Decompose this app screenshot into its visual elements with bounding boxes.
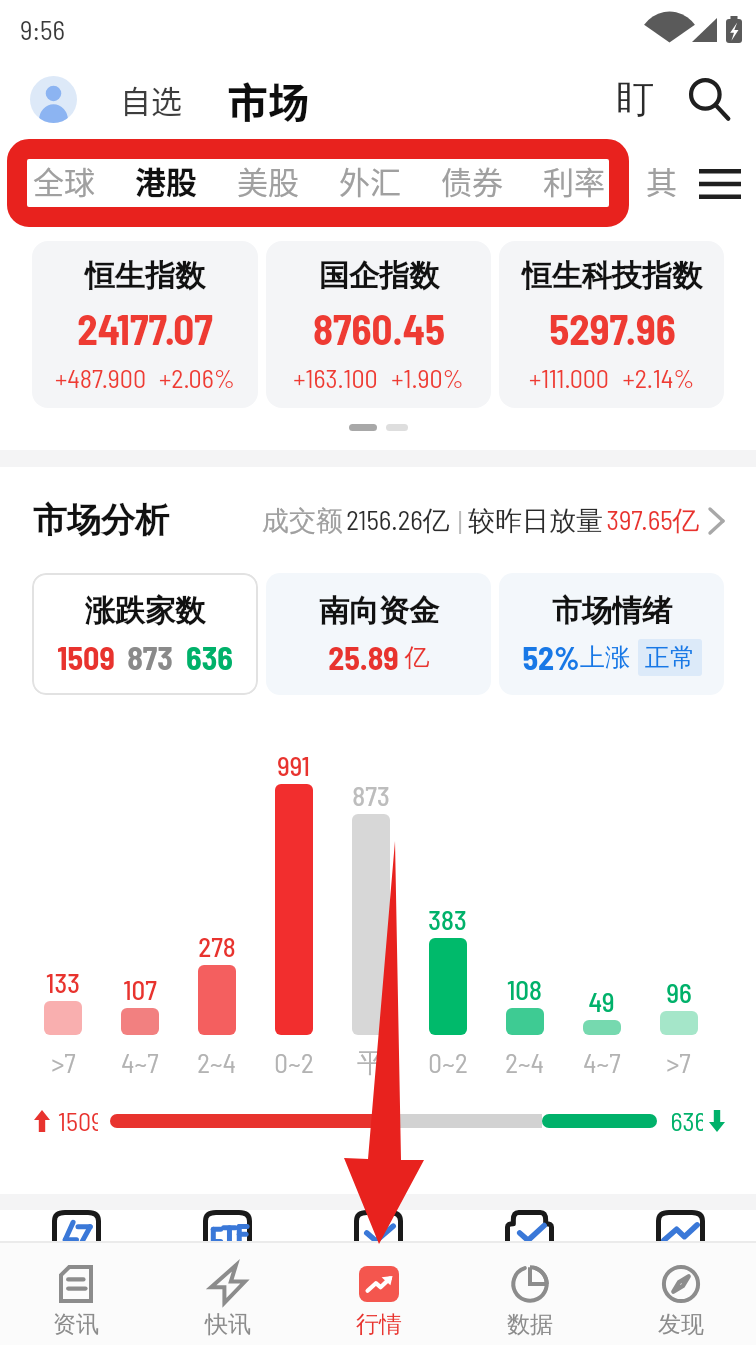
button[interactable]: 美股 bbox=[217, 140, 319, 228]
staticText: 24177.07 bbox=[77, 304, 213, 353]
button[interactable]: 恒生科技指数 bbox=[499, 241, 724, 408]
button[interactable]: 发现 bbox=[605, 1249, 756, 1339]
staticText: >7 bbox=[666, 1046, 691, 1078]
staticText: 成交额 bbox=[259, 503, 346, 538]
staticText: 2~4 bbox=[197, 1046, 236, 1078]
button[interactable] bbox=[0, 1210, 152, 1241]
staticText: 涨跌家数 bbox=[85, 592, 205, 630]
staticText: 49 bbox=[588, 985, 615, 1017]
staticText: 636 bbox=[670, 1105, 703, 1136]
staticText: 较昨日放量 bbox=[465, 503, 606, 538]
button[interactable]: 市场情绪 bbox=[499, 573, 724, 695]
staticText: 恒生科技指数 bbox=[522, 257, 702, 295]
staticText: | bbox=[450, 505, 465, 537]
staticText: +2.06% bbox=[159, 362, 235, 393]
button[interactable]: 债券 bbox=[421, 140, 523, 228]
button[interactable]: 涨跌家数 bbox=[32, 573, 258, 695]
button[interactable]: 行情 bbox=[303, 1249, 454, 1339]
staticText: 52% bbox=[522, 638, 580, 676]
staticText: 资讯 bbox=[53, 1310, 99, 1339]
staticText: 市场情绪 bbox=[552, 592, 672, 630]
staticText: 9:56 bbox=[20, 13, 65, 45]
staticText: 1509 bbox=[57, 638, 115, 676]
staticText: 636 bbox=[186, 638, 233, 676]
staticText: 平 bbox=[357, 1046, 384, 1080]
staticText: 278 bbox=[198, 930, 236, 962]
staticText: 108 bbox=[507, 973, 542, 1005]
staticText: 873 bbox=[127, 638, 173, 676]
staticText: 0~2 bbox=[274, 1046, 314, 1078]
staticText: 25.89 bbox=[328, 638, 399, 676]
staticText: >7 bbox=[51, 1046, 76, 1078]
button[interactable]: 国企指数 bbox=[266, 241, 491, 408]
staticText: 债券 bbox=[441, 158, 503, 203]
staticText: 南向资金 bbox=[319, 592, 439, 630]
staticText: 亿 bbox=[399, 641, 430, 673]
button[interactable] bbox=[454, 1210, 605, 1241]
staticText: 8760.45 bbox=[313, 304, 445, 353]
staticText: +163.100 bbox=[293, 362, 378, 393]
staticText: 5297.96 bbox=[549, 304, 676, 353]
staticText: 港股 bbox=[135, 158, 197, 203]
staticText: 0~2 bbox=[428, 1046, 468, 1078]
staticText: 991 bbox=[277, 749, 310, 781]
staticText: +2.14% bbox=[622, 362, 695, 393]
staticText: 利率 bbox=[543, 158, 605, 203]
button[interactable] bbox=[303, 1210, 454, 1241]
staticText: 1509 bbox=[58, 1105, 98, 1136]
button[interactable]: 自选 bbox=[120, 77, 182, 122]
button[interactable]: Profile bbox=[30, 76, 77, 123]
staticText: 397.65亿 bbox=[606, 503, 700, 538]
staticText: +487.900 bbox=[55, 362, 146, 393]
button[interactable]: 恒生指数 bbox=[32, 241, 258, 408]
staticText: 其 bbox=[646, 158, 677, 203]
button[interactable]: 资讯 bbox=[0, 1249, 152, 1339]
staticText: 正常 bbox=[645, 642, 695, 673]
staticText: 96 bbox=[666, 976, 692, 1008]
staticText: 133 bbox=[46, 966, 80, 998]
button[interactable]: 外汇 bbox=[319, 140, 421, 228]
staticText: 2~4 bbox=[505, 1046, 544, 1078]
staticText: 全球 bbox=[33, 158, 95, 203]
button[interactable]: 数据 bbox=[454, 1249, 605, 1339]
button[interactable]: Menu bbox=[698, 157, 742, 211]
staticText: 发现 bbox=[658, 1310, 704, 1339]
button[interactable]: 利率 bbox=[523, 140, 625, 228]
staticText: +111.000 bbox=[529, 362, 609, 393]
button[interactable] bbox=[152, 1210, 303, 1241]
staticText: 恒生指数 bbox=[85, 257, 205, 295]
staticText: 383 bbox=[428, 903, 467, 935]
button[interactable]: 南向资金 bbox=[266, 573, 491, 695]
button[interactable]: 全球 bbox=[13, 140, 115, 228]
staticText: 4~7 bbox=[121, 1046, 159, 1078]
button[interactable]: 市场 bbox=[227, 70, 309, 129]
staticText: 4~7 bbox=[583, 1046, 621, 1078]
button[interactable]: 快讯 bbox=[152, 1249, 303, 1339]
button[interactable]: 其 bbox=[625, 140, 698, 228]
button[interactable] bbox=[605, 1210, 756, 1241]
staticText: 国企指数 bbox=[319, 257, 439, 295]
staticText: +1.90% bbox=[391, 362, 464, 393]
staticText: 外汇 bbox=[339, 158, 401, 203]
staticText: 盯 bbox=[616, 75, 654, 123]
staticText: 行情 bbox=[356, 1310, 402, 1339]
staticText: 2156.26亿 bbox=[346, 503, 450, 538]
staticText: 数据 bbox=[507, 1310, 553, 1339]
button[interactable]: Watchlist bbox=[610, 74, 660, 124]
button[interactable]: Search bbox=[684, 74, 734, 124]
staticText: 107 bbox=[123, 973, 157, 1005]
staticText: 美股 bbox=[237, 158, 299, 203]
staticText: 市场分析 bbox=[33, 499, 169, 542]
staticText: 873 bbox=[352, 779, 390, 811]
button[interactable]: 港股 bbox=[115, 140, 217, 228]
staticText: 快讯 bbox=[205, 1310, 251, 1339]
staticText: 上涨 bbox=[580, 642, 630, 673]
